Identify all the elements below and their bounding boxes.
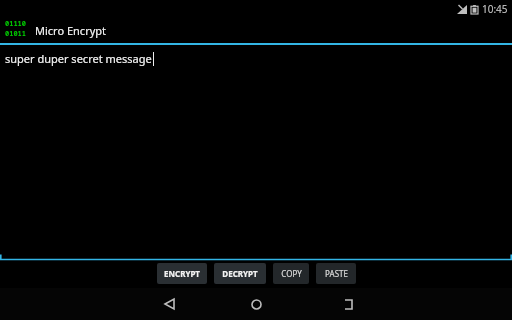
button[interactable]: Back xyxy=(152,289,186,319)
button[interactable]: super duper secret message xyxy=(0,45,512,261)
button[interactable]: ENCRYPT xyxy=(157,263,207,284)
staticText: 10:45 xyxy=(482,2,508,16)
button[interactable]: PASTE xyxy=(316,263,356,284)
button[interactable]: Home xyxy=(239,289,273,319)
staticText: 01110 xyxy=(5,19,26,29)
staticText: ENCRYPT xyxy=(164,268,200,279)
staticText: PASTE xyxy=(325,268,348,279)
staticText: DECRYPT xyxy=(222,268,258,279)
staticText: Micro Encrypt xyxy=(35,23,107,38)
staticText: COPY xyxy=(281,268,302,279)
staticText: super duper secret message xyxy=(5,51,152,66)
button[interactable]: COPY xyxy=(273,263,309,284)
button[interactable]: Recent apps xyxy=(331,289,365,319)
button[interactable]: DECRYPT xyxy=(214,263,266,284)
staticText: 01011 xyxy=(5,29,26,39)
